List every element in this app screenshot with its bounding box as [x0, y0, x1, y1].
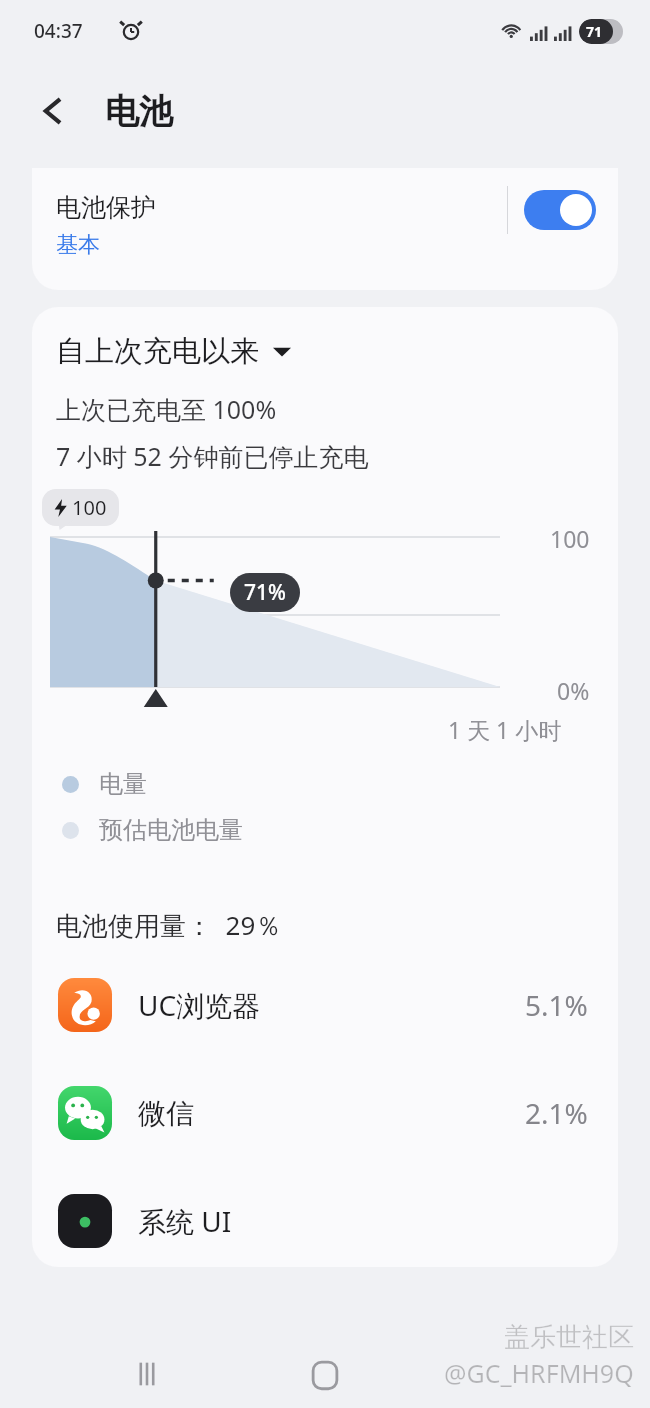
button[interactable]: 电池保护	[32, 168, 618, 290]
staticText: 预估电池电量	[99, 815, 243, 845]
staticText: 7 小时 52 分钟前已停止充电	[56, 439, 369, 473]
staticText: 电池使用量： 29％	[56, 907, 282, 943]
staticText: UC浏览器	[138, 986, 261, 1024]
staticText: 2.1%	[525, 1094, 588, 1132]
staticText: 电池	[105, 90, 173, 133]
staticText: 71	[586, 22, 603, 41]
staticText: 100	[72, 494, 107, 521]
button[interactable]: 微信	[32, 1085, 618, 1141]
staticText: 系统 UI	[138, 1202, 232, 1240]
staticText: @GC_HRFMH9Q	[444, 1356, 634, 1390]
button[interactable]: 自上次充电以来	[56, 333, 291, 370]
staticText: 基本	[56, 231, 100, 259]
staticText: 微信	[138, 1096, 194, 1131]
staticText: 71%	[244, 578, 286, 607]
button[interactable]: 系统 UI	[32, 1193, 618, 1249]
staticText: 电池保护	[56, 192, 156, 223]
button[interactable]: UC浏览器	[32, 977, 618, 1033]
staticText: 盖乐世社区	[504, 1321, 634, 1354]
button[interactable]: Recents	[120, 1347, 174, 1401]
staticText: 上次已充电至 100%	[56, 392, 277, 426]
staticText: 电量	[99, 769, 147, 799]
button[interactable]: Home	[298, 1347, 352, 1401]
staticText: 自上次充电以来	[56, 333, 259, 370]
button[interactable]: Back	[34, 90, 76, 132]
staticText: 0%	[557, 675, 590, 706]
staticText: 04:37	[34, 18, 83, 44]
staticText: 5.1%	[525, 986, 588, 1024]
staticText: 1 天 1 小时	[448, 714, 562, 745]
staticText: 100	[550, 523, 590, 554]
button[interactable]: Battery protection toggle	[524, 190, 596, 230]
